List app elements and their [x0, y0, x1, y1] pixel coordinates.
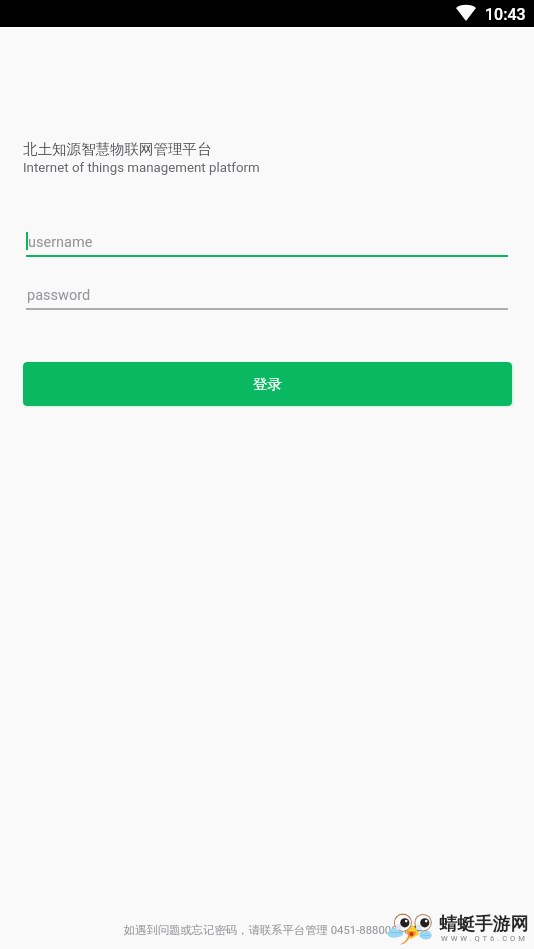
other: Wi-Fi	[456, 5, 476, 21]
button[interactable]: 登录	[23, 362, 512, 406]
staticText: 如遇到问题或忘记密码，请联系平台管理 0451-88800000	[0, 923, 534, 937]
staticText: password	[27, 287, 91, 304]
staticText: username	[28, 234, 93, 251]
staticText: Internet of things management platform	[23, 160, 260, 176]
button[interactable]: username	[26, 229, 508, 257]
staticText: 北土知源智慧物联网管理平台	[23, 140, 212, 158]
button[interactable]: password	[26, 282, 508, 310]
staticText: WWW.QT6.COM	[441, 934, 528, 943]
staticText: 10:43	[485, 5, 526, 24]
staticText: 登录	[253, 375, 282, 393]
staticText: 蜻蜓手游网	[439, 913, 529, 936]
